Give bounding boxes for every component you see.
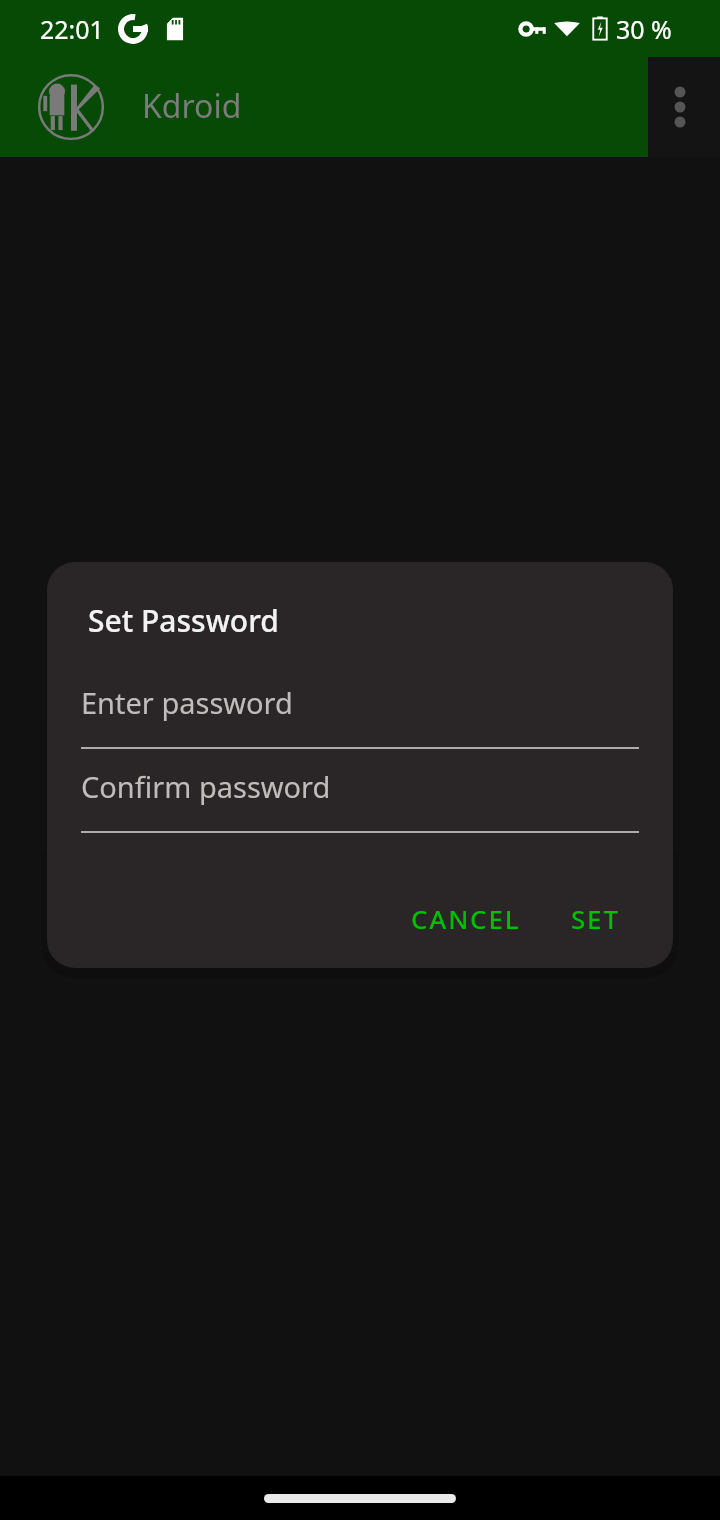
button[interactable]: More options — [648, 57, 720, 157]
button[interactable]: SET — [547, 886, 644, 950]
staticText: Kdroid — [142, 84, 242, 128]
staticText: Enter password — [81, 683, 293, 722]
staticText: SET — [571, 901, 620, 936]
staticText: Set Password — [88, 600, 279, 641]
staticText: 22:01 — [40, 12, 104, 46]
staticText: Confirm password — [81, 767, 331, 806]
button[interactable]: Confirm password — [81, 763, 639, 833]
staticText: 30 % — [616, 12, 672, 46]
button[interactable]: Enter password — [81, 679, 639, 749]
button[interactable]: CANCEL — [387, 886, 545, 950]
button[interactable]: Kdroid logo — [36, 72, 106, 142]
staticText: CANCEL — [411, 901, 521, 936]
